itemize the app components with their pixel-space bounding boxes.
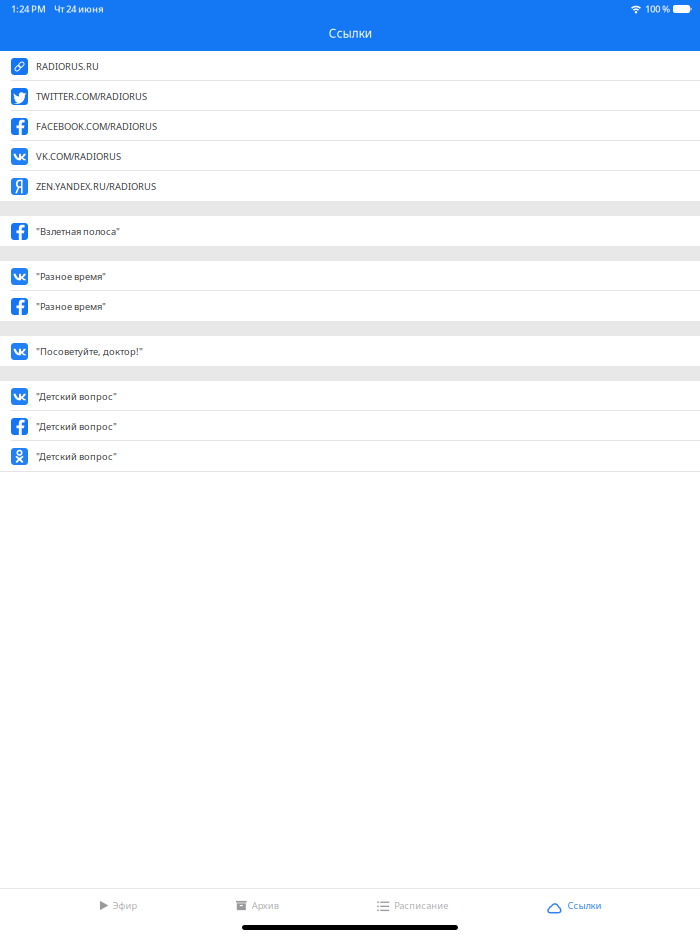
staticText: Расписание — [394, 899, 448, 912]
staticText: Ссылки — [568, 899, 602, 912]
staticText: 1:24 PM — [11, 3, 46, 15]
staticText: FACEBOOK.COM/RADIORUS — [36, 120, 157, 133]
staticText: VK.COM/RADIORUS — [36, 150, 121, 163]
button[interactable]: Ссылки — [547, 890, 602, 920]
staticText: "Разное время" — [36, 270, 106, 283]
staticText: Чт 24 июня — [54, 3, 103, 15]
button[interactable]: FACEBOOK.COM/RADIORUS — [0, 111, 700, 141]
button[interactable]: ZEN.YANDEX.RU/RADIORUS — [0, 171, 700, 201]
button[interactable]: "Разное время" — [0, 291, 700, 321]
staticText: ZEN.YANDEX.RU/RADIORUS — [36, 180, 156, 193]
button[interactable]: Расписание — [377, 890, 448, 920]
button[interactable]: "Детский вопрос" — [0, 441, 700, 471]
button[interactable]: Эфир — [98, 890, 137, 920]
button[interactable]: "Взлетная полоса" — [0, 216, 700, 246]
staticText: Архив — [252, 899, 279, 912]
staticText: Ссылки — [328, 25, 371, 41]
button[interactable]: "Посоветуйте, доктор!" — [0, 336, 700, 366]
button[interactable]: Архив — [236, 890, 279, 920]
staticText: "Детский вопрос" — [36, 450, 117, 463]
button[interactable]: "Разное время" — [0, 261, 700, 291]
button[interactable]: RADIORUS.RU — [0, 51, 700, 81]
staticText: "Детский вопрос" — [36, 390, 117, 403]
staticText: "Взлетная полоса" — [36, 225, 120, 238]
staticText: "Детский вопрос" — [36, 420, 117, 433]
staticText: "Посоветуйте, доктор!" — [36, 345, 143, 358]
staticText: "Разное время" — [36, 300, 106, 313]
button[interactable]: TWITTER.COM/RADIORUS — [0, 81, 700, 111]
staticText: Эфир — [112, 899, 137, 912]
button[interactable]: VK.COM/RADIORUS — [0, 141, 700, 171]
staticText: RADIORUS.RU — [36, 60, 99, 73]
staticText: 100 % — [645, 3, 670, 15]
button[interactable]: "Детский вопрос" — [0, 411, 700, 441]
staticText: TWITTER.COM/RADIORUS — [36, 90, 147, 103]
button[interactable]: "Детский вопрос" — [0, 381, 700, 411]
